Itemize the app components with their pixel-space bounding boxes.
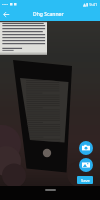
button[interactable]: Back (0, 8, 13, 21)
button[interactable]: Gallery (79, 158, 93, 172)
staticText: ▲▮ 9:41 (83, 2, 98, 7)
staticText: Dhg Scanner (33, 11, 64, 18)
button[interactable]: Save (77, 176, 93, 184)
staticText: •••• (2, 2, 9, 7)
staticText: Save (81, 178, 90, 183)
button[interactable]: Camera (79, 141, 93, 155)
